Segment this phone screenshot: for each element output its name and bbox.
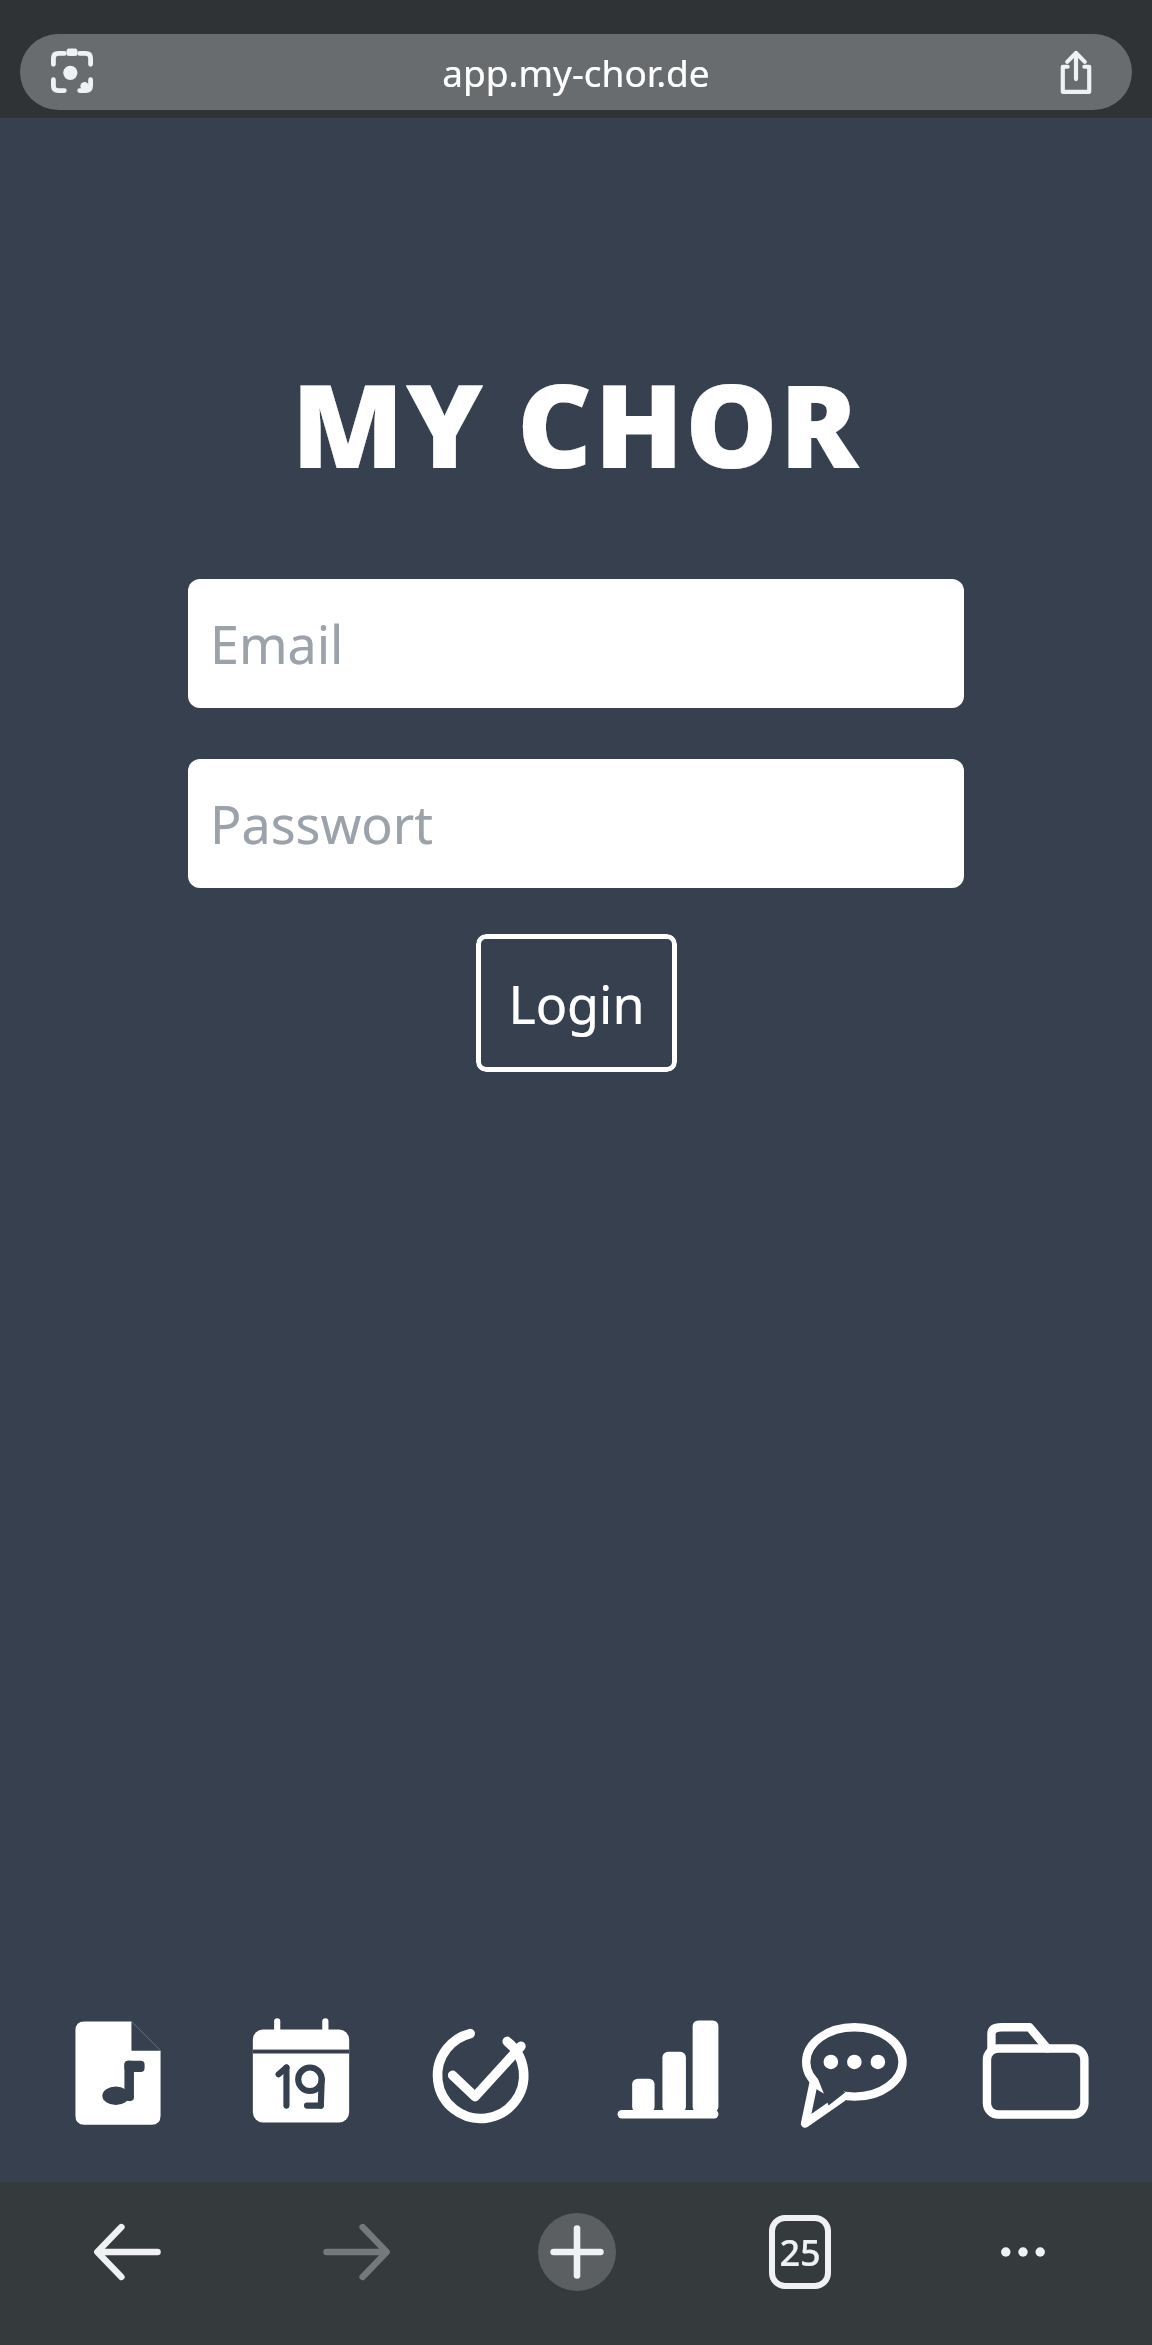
button[interactable]: Email bbox=[188, 579, 964, 708]
staticText: 25 bbox=[779, 2228, 821, 2277]
button[interactable]: Share bbox=[1048, 44, 1104, 100]
button[interactable]: New tab bbox=[465, 2196, 688, 2308]
staticText: Login bbox=[508, 968, 645, 1039]
button[interactable]: Attendance bbox=[419, 2007, 549, 2137]
button[interactable]: More options bbox=[911, 2196, 1134, 2308]
staticText: app.my-chor.de bbox=[442, 47, 710, 97]
staticText: Passwort bbox=[210, 788, 434, 859]
button[interactable]: Search with camera bbox=[20, 34, 1132, 110]
button[interactable]: Statistics bbox=[603, 2007, 733, 2137]
button[interactable]: Passwort bbox=[188, 759, 964, 888]
button[interactable]: Tabs bbox=[688, 2196, 911, 2308]
button[interactable]: Search with camera bbox=[44, 44, 100, 100]
button[interactable]: Messages bbox=[786, 2007, 916, 2137]
button[interactable]: Back bbox=[18, 2196, 242, 2308]
button[interactable]: Files bbox=[969, 2007, 1099, 2137]
button[interactable]: Forward bbox=[242, 2196, 465, 2308]
button[interactable]: Calendar bbox=[236, 2007, 366, 2137]
staticText: Email bbox=[210, 608, 344, 679]
button[interactable]: Sheet music bbox=[53, 2007, 183, 2137]
button[interactable]: Login bbox=[476, 934, 677, 1072]
staticText: MY CHOR bbox=[0, 344, 1152, 502]
